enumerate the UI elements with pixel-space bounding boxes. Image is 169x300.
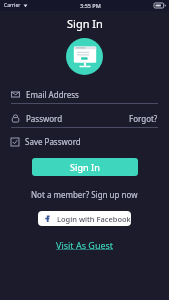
staticText: Carrier (4, 2, 21, 9)
staticText: Email Address (26, 89, 79, 100)
staticText: Password (26, 113, 63, 124)
staticText: Sign In (70, 161, 100, 173)
other: Password (11, 114, 20, 123)
button[interactable]: Visit As Guest (56, 239, 114, 251)
button[interactable]: Forgot? (129, 113, 158, 124)
button[interactable]: Not a member? Sign up now (31, 189, 138, 200)
button[interactable]: Login with Facebook (38, 211, 131, 226)
button[interactable]: Sign In (32, 158, 138, 176)
other: Email (11, 90, 20, 99)
staticText: Forgot? (129, 113, 158, 124)
staticText: Sign In (67, 16, 103, 31)
button[interactable]: Email (11, 87, 158, 104)
button[interactable]: Save Password (11, 136, 81, 147)
staticText: Visit As Guest (56, 239, 114, 251)
button[interactable]: Password (11, 111, 158, 128)
staticText: 3:55 PM (80, 2, 101, 9)
staticText: Save Password (25, 136, 81, 147)
staticText: Not a member? Sign up now (31, 189, 138, 200)
staticText: Login with Facebook (57, 214, 131, 224)
